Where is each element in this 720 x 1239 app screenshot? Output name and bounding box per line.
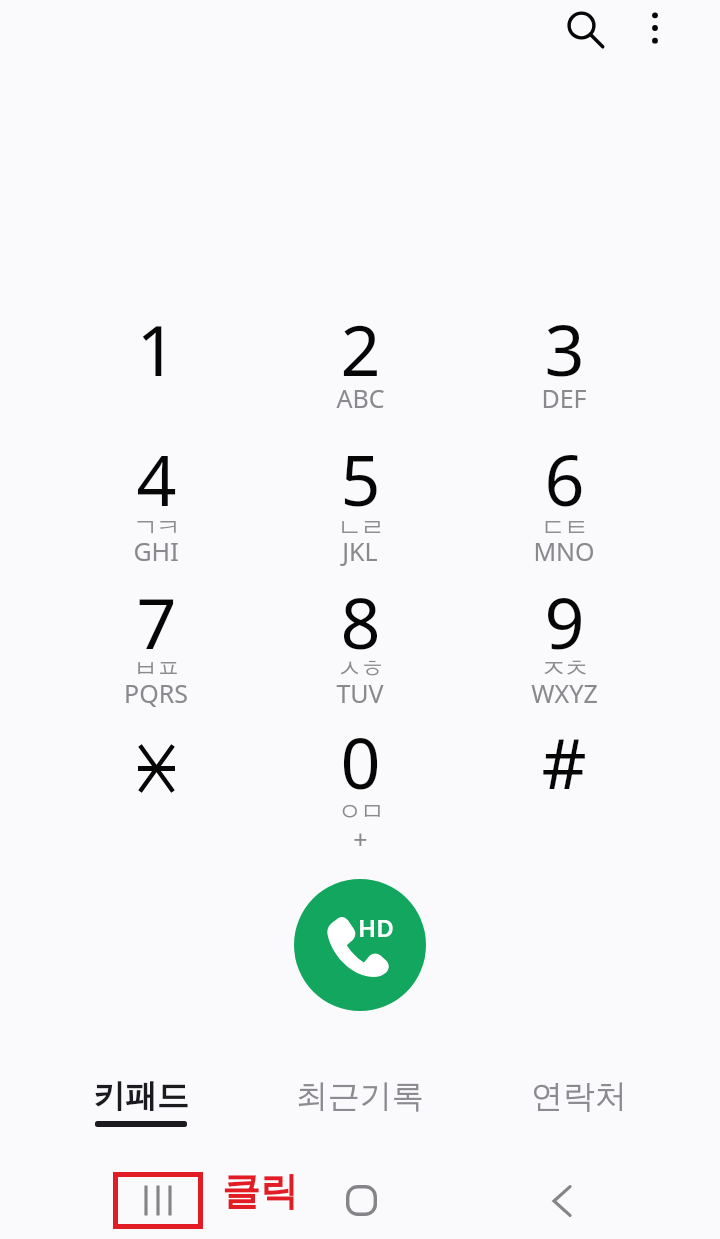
button[interactable]: *: [56, 699, 256, 829]
staticText: DEF: [541, 381, 587, 415]
button[interactable]: 3: [464, 286, 664, 416]
button[interactable]: More options: [619, 0, 691, 64]
staticText: 9: [544, 574, 585, 669]
button[interactable]: 최근기록: [250, 1060, 469, 1135]
button[interactable]: #: [464, 699, 664, 829]
staticText: 1: [136, 301, 177, 396]
staticText: 5: [340, 431, 381, 526]
staticText: ㄷㅌ: [541, 512, 587, 543]
button[interactable]: 5: [260, 416, 460, 546]
button[interactable]: 4: [56, 416, 256, 546]
staticText: 2: [340, 301, 381, 396]
staticText: ㅂㅍ: [133, 653, 179, 684]
staticText: 4: [136, 431, 177, 526]
button[interactable]: 9: [464, 559, 664, 689]
staticText: GHI: [133, 534, 179, 568]
staticText: +: [353, 822, 368, 856]
staticText: ㅇㅁ: [337, 796, 383, 827]
staticText: ㅅㅎ: [337, 653, 383, 684]
button[interactable]: 6: [464, 416, 664, 546]
staticText: HD: [358, 911, 394, 944]
staticText: JKL: [342, 534, 378, 568]
button[interactable]: Home: [321, 1172, 401, 1229]
staticText: 연락처: [531, 1076, 627, 1116]
staticText: 키패드: [93, 1076, 189, 1116]
button[interactable]: 연락처: [469, 1060, 688, 1135]
staticText: 0: [340, 714, 381, 809]
staticText: 8: [340, 574, 381, 669]
button[interactable]: Call: [294, 879, 426, 1011]
staticText: 7: [136, 574, 177, 669]
button[interactable]: Recent apps: [113, 1172, 203, 1229]
button[interactable]: 2: [260, 286, 460, 416]
staticText: 클릭: [222, 1167, 298, 1215]
staticText: ㄱㅋ: [133, 512, 179, 543]
staticText: 3: [544, 301, 585, 396]
staticText: 최근기록: [296, 1076, 424, 1116]
button[interactable]: Back: [522, 1172, 602, 1229]
staticText: #: [541, 714, 587, 809]
staticText: TUV: [336, 676, 384, 710]
button[interactable]: 키패드: [32, 1060, 250, 1135]
staticText: ABC: [336, 381, 385, 415]
staticText: ㅈㅊ: [541, 653, 587, 684]
button[interactable]: Search: [545, 0, 617, 64]
staticText: 6: [544, 431, 585, 526]
button[interactable]: 1: [56, 286, 256, 416]
staticText: MNO: [533, 534, 595, 568]
button[interactable]: 0: [260, 699, 460, 829]
button[interactable]: 7: [56, 559, 256, 689]
staticText: ㄴㄹ: [337, 512, 383, 543]
staticText: PQRS: [124, 676, 188, 710]
staticText: WXYZ: [531, 676, 598, 710]
button[interactable]: 8: [260, 559, 460, 689]
